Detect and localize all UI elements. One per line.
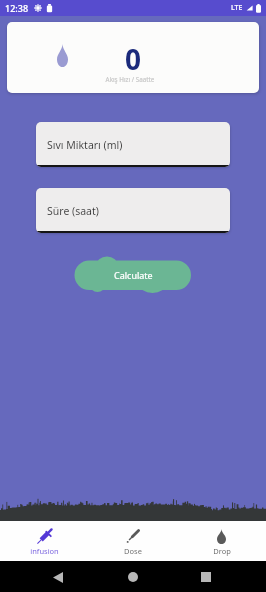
button[interactable]: Back <box>45 565 71 589</box>
staticText: Akış Hızı / Saatte <box>80 75 180 84</box>
button[interactable]: Home <box>120 565 146 589</box>
button[interactable]: Dose tab <box>88 521 177 561</box>
button[interactable]: Süre (saat) <box>36 188 230 233</box>
staticText: 0 <box>116 40 150 78</box>
button[interactable]: Drop tab <box>177 521 266 561</box>
staticText: Sıvı Miktarı (ml) <box>47 138 123 152</box>
button[interactable]: Calculate <box>70 250 196 294</box>
staticText: Süre (saat) <box>47 204 99 218</box>
staticText: infusion <box>30 546 59 556</box>
button[interactable]: 0 <box>7 22 259 93</box>
staticText: Dose <box>124 546 142 556</box>
staticText: Calculate <box>114 269 153 281</box>
staticText: LTE <box>231 3 243 13</box>
staticText: Drop <box>213 546 231 556</box>
staticText: 12:38 <box>5 2 29 14</box>
button[interactable]: Infusion tab <box>0 521 88 561</box>
button[interactable]: Sıvı Miktarı (ml) <box>36 122 230 167</box>
button[interactable]: Recents <box>193 565 219 589</box>
